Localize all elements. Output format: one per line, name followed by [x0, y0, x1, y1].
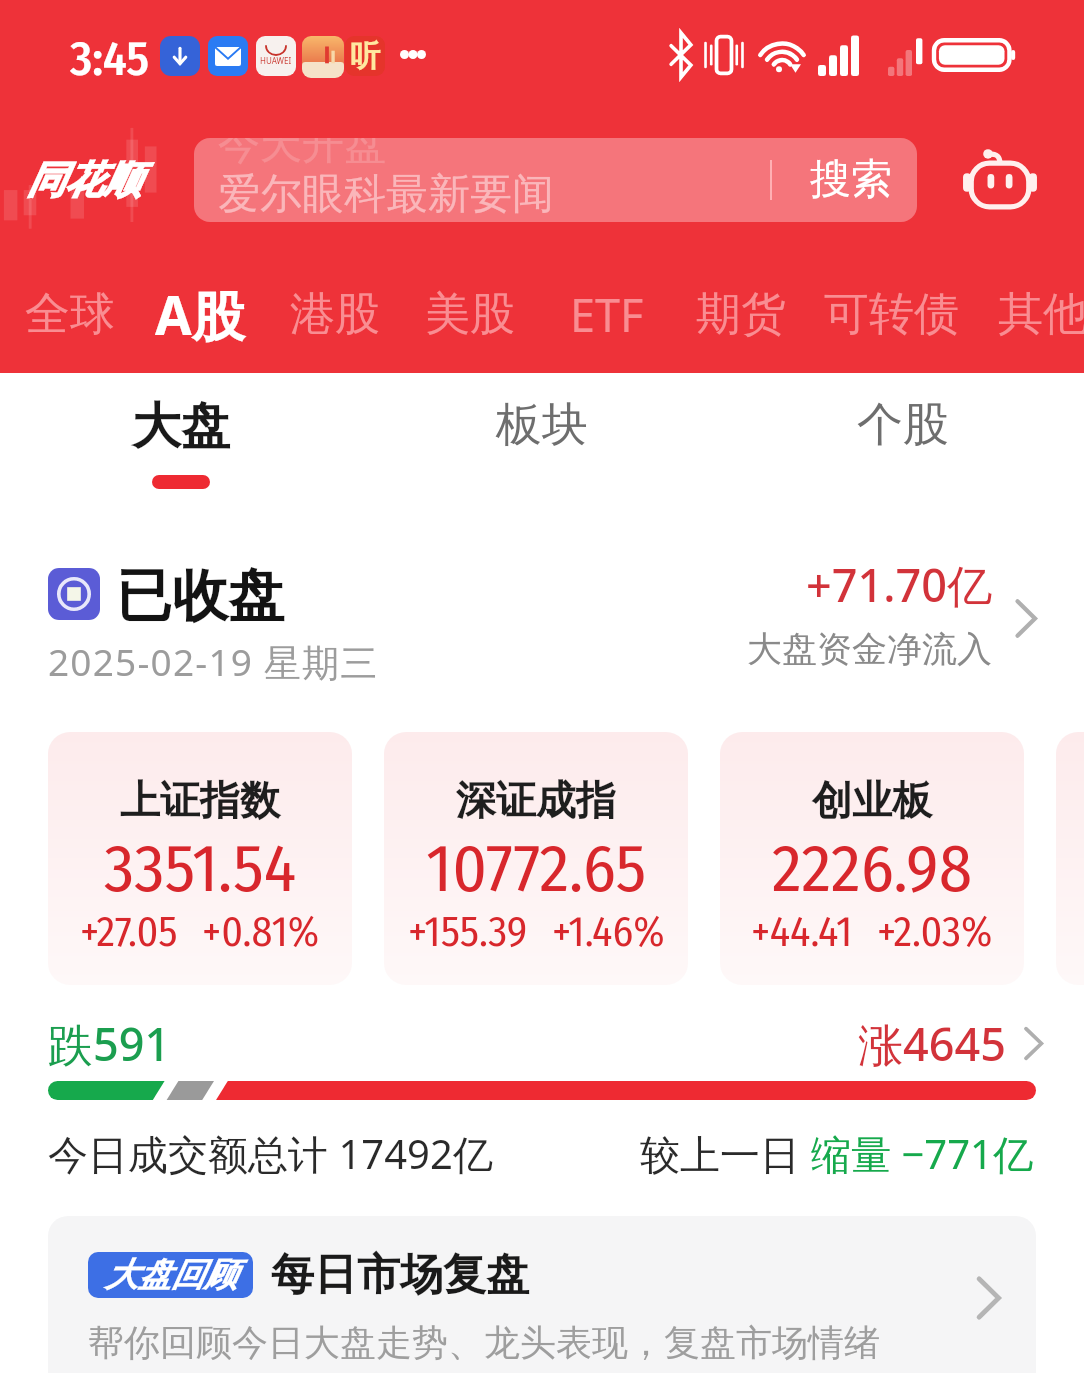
staticText: 搜索 [810, 154, 892, 206]
staticText: 听 [350, 37, 380, 75]
staticText: +1.46% [552, 907, 665, 957]
staticText: 大盘回顾 [105, 1254, 237, 1296]
button[interactable]: 全球 [25, 264, 115, 364]
button[interactable]: ETF [566, 264, 647, 364]
button[interactable]: 板块 [422, 378, 662, 498]
staticText: +0.81% [202, 907, 320, 957]
staticText: 涨4645 [858, 1013, 1006, 1074]
button[interactable]: AI assistant [950, 138, 1050, 222]
button[interactable]: 其他 [998, 264, 1084, 364]
button[interactable]: 美股 [425, 264, 515, 364]
button[interactable]: 深证成指 [384, 732, 688, 985]
button[interactable]: 搜索 [772, 138, 917, 222]
staticText: 全球 [25, 286, 115, 343]
button[interactable]: 同花顺 logo [0, 138, 174, 222]
button[interactable]: 可转债 [824, 264, 959, 364]
staticText: +2.03% [877, 907, 993, 957]
staticText: 板块 [496, 396, 588, 454]
staticText: 2025-02-19 星期三 [48, 636, 379, 687]
staticText: 期货 [696, 286, 786, 343]
staticText: 10772.65 [426, 828, 647, 908]
staticText: 港股 [290, 286, 380, 343]
staticText: 3351.54 [104, 828, 297, 908]
button[interactable]: 港股 [290, 264, 380, 364]
staticText: +71.70亿 [806, 554, 992, 615]
staticText: 每日市场复盘 [271, 1248, 529, 1302]
button[interactable]: 今天开盘 [194, 138, 917, 222]
staticText: 帮你回顾今日大盘走势、龙头表现，复盘市场情绪 [88, 1320, 880, 1365]
staticText: 今日成交额总计 17492亿 [48, 1126, 493, 1181]
staticText: +44.41 [751, 907, 853, 957]
staticText: A股 [155, 278, 245, 350]
staticText: 同花顺 [27, 156, 141, 204]
staticText: +155.39 [408, 907, 528, 957]
staticText: 大盘 [132, 396, 230, 458]
staticText: 深证成指 [456, 775, 616, 825]
button[interactable]: 大盘回顾 [48, 1216, 1036, 1373]
staticText: 大盘资金净流入 [747, 627, 992, 671]
staticText: +27.05 [80, 907, 178, 957]
staticText: 今天开盘 [218, 138, 386, 171]
button[interactable]: 期货 [696, 264, 786, 364]
staticText: 创业板 [812, 775, 932, 825]
staticText: 2226.98 [772, 828, 973, 908]
staticText: 已收盘 [116, 561, 284, 632]
button[interactable]: 创业板 [720, 732, 1024, 985]
staticText: ETF [570, 284, 644, 345]
button[interactable]: 跌591 [0, 1005, 1084, 1115]
staticText: 较上一日 [640, 1126, 811, 1181]
button[interactable]: 个股 [783, 378, 1023, 498]
button[interactable]: 已收盘 [0, 539, 1084, 679]
button[interactable]: 上证指数 [48, 732, 352, 985]
staticText: 美股 [425, 286, 515, 343]
staticText: 跌591 [48, 1013, 171, 1074]
staticText: 其他 [998, 286, 1084, 343]
staticText: 爱尔眼科最新要闻 [218, 168, 554, 221]
button[interactable]: 大盘 [61, 378, 301, 498]
staticText: 个股 [857, 396, 949, 454]
staticText: HUAWEI [260, 55, 292, 66]
staticText: 3:45 [70, 30, 150, 88]
staticText: 可转债 [824, 286, 959, 343]
button[interactable]: A股 [147, 264, 253, 364]
staticText: 缩量 −771亿 [811, 1126, 1033, 1181]
button[interactable]: 科创50 [1056, 732, 1084, 985]
staticText: 上证指数 [120, 775, 280, 825]
